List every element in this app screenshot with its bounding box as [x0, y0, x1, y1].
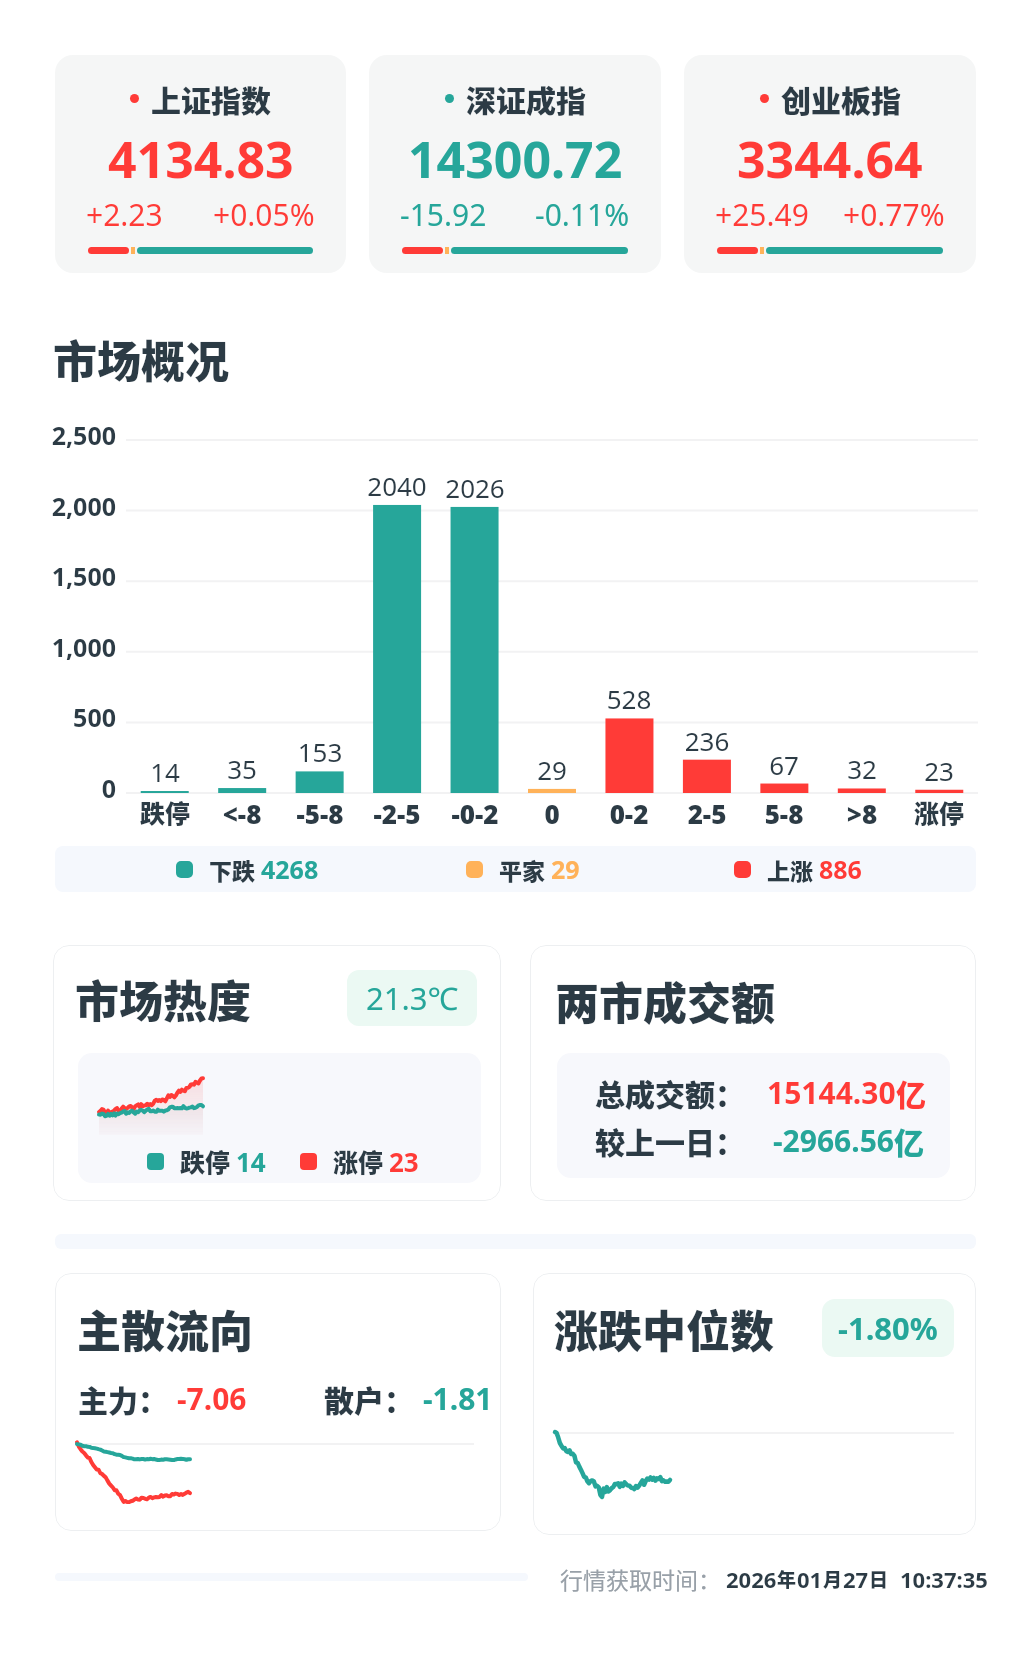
- staticText: 2,500: [40, 418, 116, 452]
- staticText: 2,000: [40, 489, 116, 523]
- button[interactable]: 深证成指: [369, 55, 661, 273]
- staticText: 4268: [261, 852, 319, 886]
- staticText: 2026: [726, 1564, 777, 1594]
- staticText: 创业板指: [781, 77, 901, 120]
- staticText: 35: [182, 751, 302, 786]
- staticText: 01: [797, 1564, 823, 1594]
- staticText: 下跌: [209, 853, 255, 886]
- staticText: 上证指数: [151, 77, 271, 120]
- staticText: 日: [869, 1565, 889, 1593]
- staticText: 总成交额：: [595, 1071, 745, 1114]
- staticText: 2-5: [647, 796, 767, 831]
- staticText: -1.80%: [838, 1307, 938, 1349]
- staticText: 月: [823, 1565, 843, 1593]
- staticText: 21.3℃: [366, 977, 459, 1019]
- staticText: +0.77%: [843, 194, 945, 235]
- staticText: 较上一日：: [595, 1119, 745, 1162]
- button[interactable]: 两市成交额: [530, 945, 976, 1201]
- staticText: 深证成指: [466, 77, 586, 120]
- staticText: +0.05%: [213, 194, 315, 235]
- staticText: 4134.83: [108, 125, 294, 193]
- staticText: 5-8: [724, 796, 844, 831]
- staticText: 23: [879, 753, 999, 788]
- staticText: -15.92: [400, 194, 487, 235]
- staticText: 两市成交额: [555, 969, 775, 1033]
- staticText: -1.81: [423, 1378, 493, 1419]
- staticText: 市场热度: [75, 967, 251, 1031]
- staticText: 14: [105, 754, 225, 789]
- staticText: 年: [777, 1565, 797, 1593]
- staticText: 29: [551, 852, 580, 886]
- staticText: 平家: [499, 853, 545, 886]
- staticText: 528: [569, 681, 689, 716]
- staticText: 跌停: [105, 794, 225, 830]
- staticText: 153: [260, 734, 380, 769]
- staticText: 涨跌中位数: [554, 1297, 774, 1361]
- staticText: 236: [647, 723, 767, 758]
- staticText: 29: [492, 752, 612, 787]
- staticText: 市场概况: [53, 327, 229, 391]
- staticText: <-8: [182, 796, 302, 831]
- staticText: 0: [492, 796, 612, 831]
- staticText: 32: [802, 751, 922, 786]
- staticText: 亿: [894, 1119, 924, 1162]
- staticText: 涨停: [879, 794, 999, 830]
- staticText: 散户：: [324, 1377, 414, 1420]
- staticText: 10:37:35: [900, 1564, 988, 1594]
- staticText: 886: [819, 852, 862, 886]
- staticText: 67: [724, 747, 844, 782]
- staticText: 主力：: [78, 1377, 168, 1420]
- staticText: +2.23: [86, 194, 163, 235]
- staticText: 1,000: [40, 630, 116, 664]
- staticText: -5-8: [260, 796, 380, 831]
- staticText: 14300.72: [408, 125, 623, 193]
- button[interactable]: 散户：: [324, 1377, 493, 1420]
- staticText: 主散流向: [77, 1297, 253, 1361]
- staticText: 27: [843, 1564, 869, 1594]
- button[interactable]: 市场热度: [53, 945, 501, 1201]
- button[interactable]: 平家: [466, 846, 580, 892]
- staticText: 500: [40, 700, 116, 734]
- button[interactable]: 上涨: [734, 846, 862, 892]
- button[interactable]: 涨跌中位数: [533, 1273, 976, 1535]
- staticText: -0-2: [415, 796, 535, 831]
- button[interactable]: 跌停: [147, 1140, 419, 1182]
- staticText: 0: [40, 771, 116, 805]
- staticText: 2040: [337, 468, 457, 503]
- button[interactable]: 下跌: [176, 846, 319, 892]
- staticText: 涨停: [333, 1143, 384, 1179]
- staticText: -7.06: [177, 1378, 247, 1419]
- staticText: 3344.64: [737, 125, 923, 193]
- staticText: 1,500: [40, 559, 116, 593]
- staticText: >8: [802, 796, 922, 831]
- staticText: 23: [389, 1144, 419, 1179]
- staticText: 2026: [415, 470, 535, 505]
- staticText: 跌停: [180, 1143, 231, 1179]
- staticText: 0-2: [569, 796, 689, 831]
- staticText: -2966.56: [773, 1120, 894, 1161]
- staticText: 上涨: [767, 853, 813, 886]
- staticText: -2-5: [337, 796, 457, 831]
- staticText: 15144.30: [767, 1072, 896, 1113]
- button[interactable]: 上证指数: [55, 55, 346, 273]
- staticText: 14: [236, 1144, 266, 1179]
- button[interactable]: 主力：: [78, 1377, 247, 1420]
- button[interactable]: 创业板指: [684, 55, 976, 273]
- staticText: +25.49: [715, 194, 809, 235]
- staticText: -0.11%: [535, 194, 630, 235]
- staticText: 亿: [896, 1071, 926, 1114]
- staticText: 行情获取时间：: [560, 1562, 721, 1595]
- button[interactable]: 主散流向: [55, 1273, 501, 1531]
